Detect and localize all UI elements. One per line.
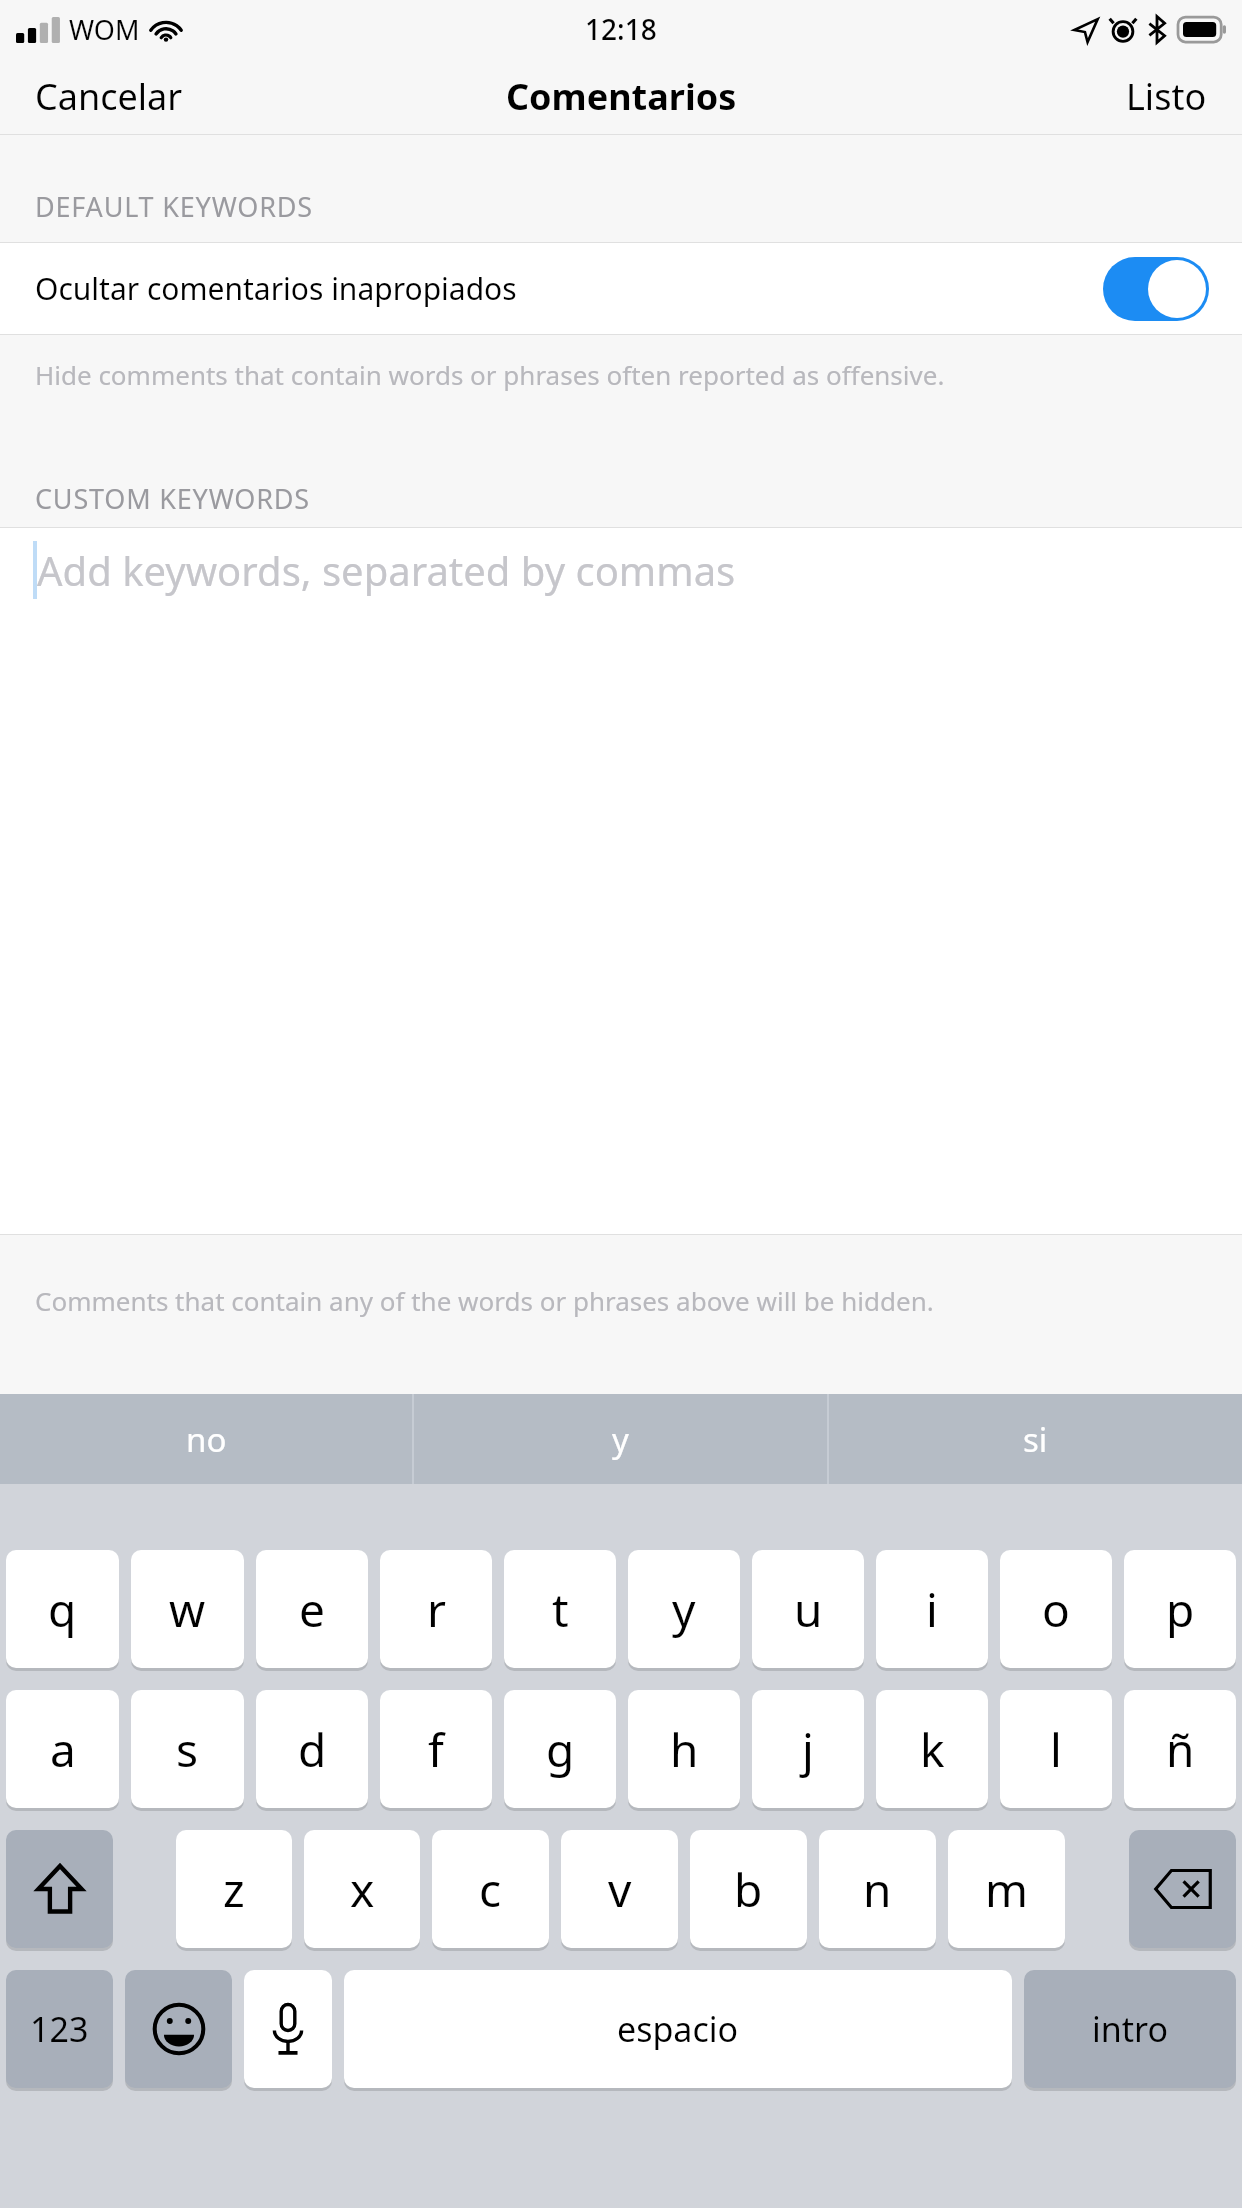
staticText: WOM: [69, 11, 140, 48]
staticText: f: [428, 1718, 444, 1781]
staticText: 12:18: [585, 10, 657, 48]
button[interactable]: i: [876, 1550, 988, 1668]
button[interactable]: z: [176, 1830, 292, 1948]
button[interactable]: d: [256, 1690, 368, 1808]
button[interactable]: b: [690, 1830, 807, 1948]
staticText: ñ: [1166, 1718, 1195, 1781]
button[interactable]: g: [504, 1690, 616, 1808]
staticText: p: [1166, 1578, 1195, 1641]
staticText: b: [734, 1858, 763, 1921]
staticText: CUSTOM KEYWORDS: [35, 480, 310, 517]
staticText: i: [926, 1578, 938, 1641]
button[interactable]: u: [752, 1550, 864, 1668]
button[interactable]: x: [304, 1830, 420, 1948]
button[interactable]: v: [561, 1830, 678, 1948]
button[interactable]: Shift: [6, 1830, 113, 1948]
button[interactable]: m: [948, 1830, 1065, 1948]
button[interactable]: r: [380, 1550, 492, 1668]
button[interactable]: n: [819, 1830, 936, 1948]
staticText: intro: [1092, 2006, 1168, 2052]
button[interactable]: Delete: [1129, 1830, 1236, 1948]
staticText: e: [299, 1578, 325, 1641]
button[interactable]: espacio: [344, 1970, 1012, 2088]
staticText: m: [985, 1858, 1029, 1921]
staticText: y: [612, 1417, 629, 1462]
button[interactable]: Add keywords, separated by commas: [0, 527, 1242, 1235]
button[interactable]: y: [414, 1394, 827, 1484]
button[interactable]: Cancelar: [0, 64, 203, 129]
staticText: Comentarios: [506, 72, 737, 121]
button[interactable]: t: [504, 1550, 616, 1668]
button[interactable]: w: [131, 1550, 244, 1668]
button[interactable]: p: [1124, 1550, 1236, 1668]
staticText: y: [672, 1578, 696, 1641]
staticText: no: [186, 1417, 227, 1462]
button[interactable]: Listo: [1106, 64, 1242, 129]
staticText: Hide comments that contain words or phra…: [35, 357, 945, 392]
button[interactable]: Numbers: [6, 1970, 113, 2088]
staticText: j: [802, 1718, 814, 1781]
staticText: si: [1023, 1417, 1048, 1462]
button[interactable]: e: [256, 1550, 368, 1668]
button[interactable]: k: [876, 1690, 988, 1808]
staticText: a: [50, 1718, 76, 1781]
staticText: q: [48, 1578, 77, 1641]
button[interactable]: no: [0, 1394, 412, 1484]
staticText: Add keywords, separated by commas: [37, 543, 736, 597]
button[interactable]: Emoji: [125, 1970, 232, 2088]
staticText: r: [427, 1578, 446, 1641]
button[interactable]: f: [380, 1690, 492, 1808]
staticText: o: [1042, 1578, 1070, 1641]
button[interactable]: j: [752, 1690, 864, 1808]
staticText: s: [176, 1718, 199, 1781]
staticText: espacio: [617, 2006, 739, 2052]
button[interactable]: si: [829, 1394, 1242, 1484]
button[interactable]: c: [432, 1830, 549, 1948]
button[interactable]: q: [6, 1550, 119, 1668]
staticText: Listo: [1126, 72, 1207, 121]
button[interactable]: Dictation: [244, 1970, 332, 2088]
staticText: z: [223, 1858, 245, 1921]
staticText: k: [920, 1718, 945, 1781]
staticText: d: [298, 1718, 327, 1781]
staticText: u: [794, 1578, 823, 1641]
staticText: Cancelar: [35, 72, 183, 121]
button[interactable]: [1103, 257, 1209, 321]
staticText: c: [479, 1858, 502, 1921]
button[interactable]: intro: [1024, 1970, 1236, 2088]
staticText: w: [169, 1578, 206, 1641]
staticText: h: [670, 1718, 699, 1781]
staticText: Comments that contain any of the words o…: [35, 1283, 934, 1318]
staticText: 123: [30, 2006, 89, 2052]
staticText: DEFAULT KEYWORDS: [35, 188, 313, 225]
staticText: l: [1050, 1718, 1062, 1781]
button[interactable]: y: [628, 1550, 740, 1668]
staticText: x: [350, 1858, 375, 1921]
button[interactable]: a: [6, 1690, 119, 1808]
button[interactable]: ñ: [1124, 1690, 1236, 1808]
button[interactable]: h: [628, 1690, 740, 1808]
button[interactable]: o: [1000, 1550, 1112, 1668]
button[interactable]: s: [131, 1690, 244, 1808]
staticText: g: [546, 1718, 575, 1781]
button[interactable]: l: [1000, 1690, 1112, 1808]
staticText: t: [552, 1578, 569, 1641]
staticText: Ocultar comentarios inapropiados: [35, 268, 517, 309]
staticText: n: [863, 1858, 892, 1921]
staticText: v: [608, 1858, 632, 1921]
button[interactable]: Ocultar comentarios inapropiados: [0, 242, 1242, 335]
